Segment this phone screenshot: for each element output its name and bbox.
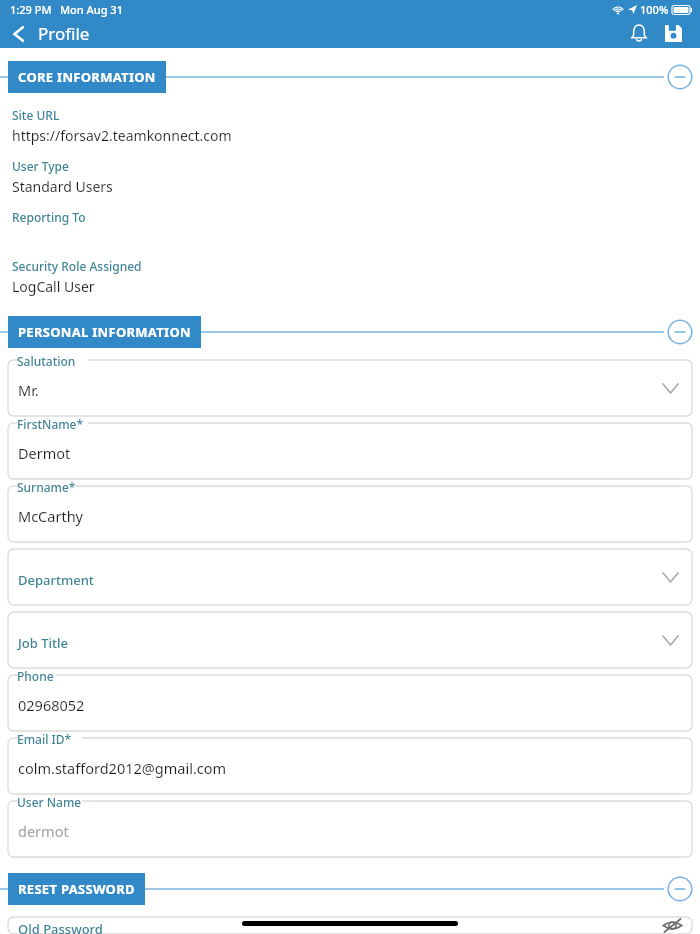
staticText: User Type bbox=[12, 158, 69, 174]
staticText: Reporting To bbox=[12, 209, 86, 225]
button[interactable]: Notifications bbox=[622, 18, 656, 48]
staticText: Old Password bbox=[18, 920, 103, 934]
button[interactable]: Save bbox=[656, 18, 690, 48]
staticText: FirstName* bbox=[17, 416, 84, 432]
staticText: https://forsav2.teamkonnect.com bbox=[12, 126, 232, 145]
staticText: User Name bbox=[17, 794, 82, 810]
staticText: 1:29 PM bbox=[10, 2, 52, 17]
button[interactable]: User Type bbox=[0, 158, 700, 196]
button[interactable]: Salutation bbox=[0, 360, 700, 416]
staticText: colm.stafford2012@gmail.com bbox=[18, 758, 227, 778]
button[interactable]: Collapse RESET PASSWORD bbox=[666, 875, 694, 903]
other: Open Job Title dropdown bbox=[658, 628, 682, 652]
staticText: Mr. bbox=[18, 380, 39, 400]
staticText: Mon Aug 31 bbox=[60, 2, 123, 17]
staticText: CORE INFORMATION bbox=[18, 68, 156, 86]
button[interactable]: Reporting To bbox=[0, 209, 700, 245]
staticText: Salutation bbox=[17, 353, 76, 369]
staticText: Phone bbox=[17, 668, 54, 684]
button[interactable]: RESET PASSWORD bbox=[8, 873, 145, 905]
button[interactable]: Show password bbox=[658, 917, 686, 934]
staticText: McCarthy bbox=[18, 506, 83, 526]
staticText: RESET PASSWORD bbox=[18, 880, 135, 898]
staticText: Security Role Assigned bbox=[12, 258, 142, 274]
button[interactable]: FirstName* bbox=[0, 423, 700, 479]
button[interactable]: Job Title bbox=[0, 612, 700, 668]
staticText: PERSONAL INFORMATION bbox=[18, 323, 191, 341]
staticText: Standard Users bbox=[12, 177, 113, 196]
button[interactable]: CORE INFORMATION bbox=[8, 61, 166, 93]
button[interactable]: Profile bbox=[12, 22, 96, 45]
staticText: Email ID* bbox=[17, 731, 72, 747]
button[interactable]: Surname* bbox=[0, 486, 700, 542]
button[interactable]: Collapse CORE INFORMATION bbox=[666, 63, 694, 91]
staticText: Dermot bbox=[18, 443, 71, 463]
staticText: Job Title bbox=[18, 634, 68, 652]
staticText: Profile bbox=[38, 22, 90, 45]
button[interactable]: PERSONAL INFORMATION bbox=[8, 316, 201, 348]
staticText: 02968052 bbox=[18, 695, 85, 715]
button[interactable]: Security Role Assigned bbox=[0, 258, 700, 296]
button[interactable]: Email ID* bbox=[0, 738, 700, 794]
button[interactable]: Phone bbox=[0, 675, 700, 731]
button[interactable]: Collapse PERSONAL INFORMATION bbox=[666, 318, 694, 346]
other: Open Salutation dropdown bbox=[658, 376, 682, 400]
button[interactable]: Site URL bbox=[0, 107, 700, 145]
staticText: Department bbox=[18, 571, 94, 589]
button[interactable]: User Name bbox=[0, 801, 700, 857]
staticText: Site URL bbox=[12, 107, 60, 123]
other: Open Department dropdown bbox=[658, 565, 682, 589]
button[interactable]: Old Password bbox=[0, 917, 700, 934]
staticText: Surname* bbox=[17, 479, 76, 495]
button[interactable]: Department bbox=[0, 549, 700, 605]
staticText: 100% bbox=[640, 2, 669, 17]
staticText: LogCall User bbox=[12, 277, 95, 296]
staticText: dermot bbox=[18, 821, 69, 841]
